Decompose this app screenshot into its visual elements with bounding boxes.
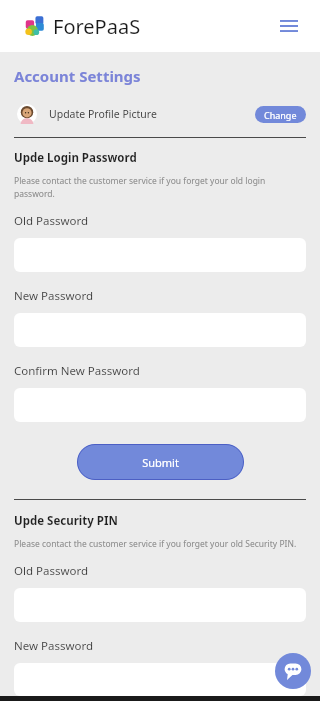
button[interactable]: Change xyxy=(255,106,306,123)
button[interactable] xyxy=(14,663,306,696)
staticText: Account Settings xyxy=(14,66,141,86)
staticText: Confirm New Password xyxy=(14,363,140,379)
staticText: Upde Login Password xyxy=(14,150,137,166)
staticText: Old Password xyxy=(14,563,89,579)
staticText: Old Password xyxy=(14,213,89,229)
staticText: New Password xyxy=(14,288,94,304)
staticText: Update Profile Picture xyxy=(49,107,157,121)
staticText: Please contact the customer service if y… xyxy=(14,175,306,200)
staticText: Upde Security PIN xyxy=(14,513,118,529)
staticText: Please contact the customer service if y… xyxy=(14,538,297,550)
button[interactable]: Update Profile Picture xyxy=(14,100,306,128)
staticText: Change xyxy=(264,109,297,121)
button[interactable]: Submit xyxy=(77,444,244,480)
button[interactable]: Menu xyxy=(274,11,304,41)
staticText: ForePaaS xyxy=(53,13,141,40)
button[interactable]: Chat support xyxy=(275,653,311,689)
staticText: Submit xyxy=(142,455,179,470)
staticText: New Password xyxy=(14,638,94,654)
